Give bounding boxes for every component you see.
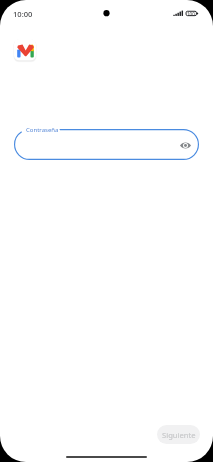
staticText: 10:00 (13, 9, 33, 19)
button[interactable]: Siguiente (157, 425, 200, 444)
staticText: Contraseña (26, 126, 59, 134)
staticText: Siguiente (162, 430, 196, 440)
staticText: 100 (187, 11, 195, 17)
button[interactable]: Contraseña (14, 129, 199, 160)
button[interactable]: Mostrar contraseña (177, 137, 193, 153)
